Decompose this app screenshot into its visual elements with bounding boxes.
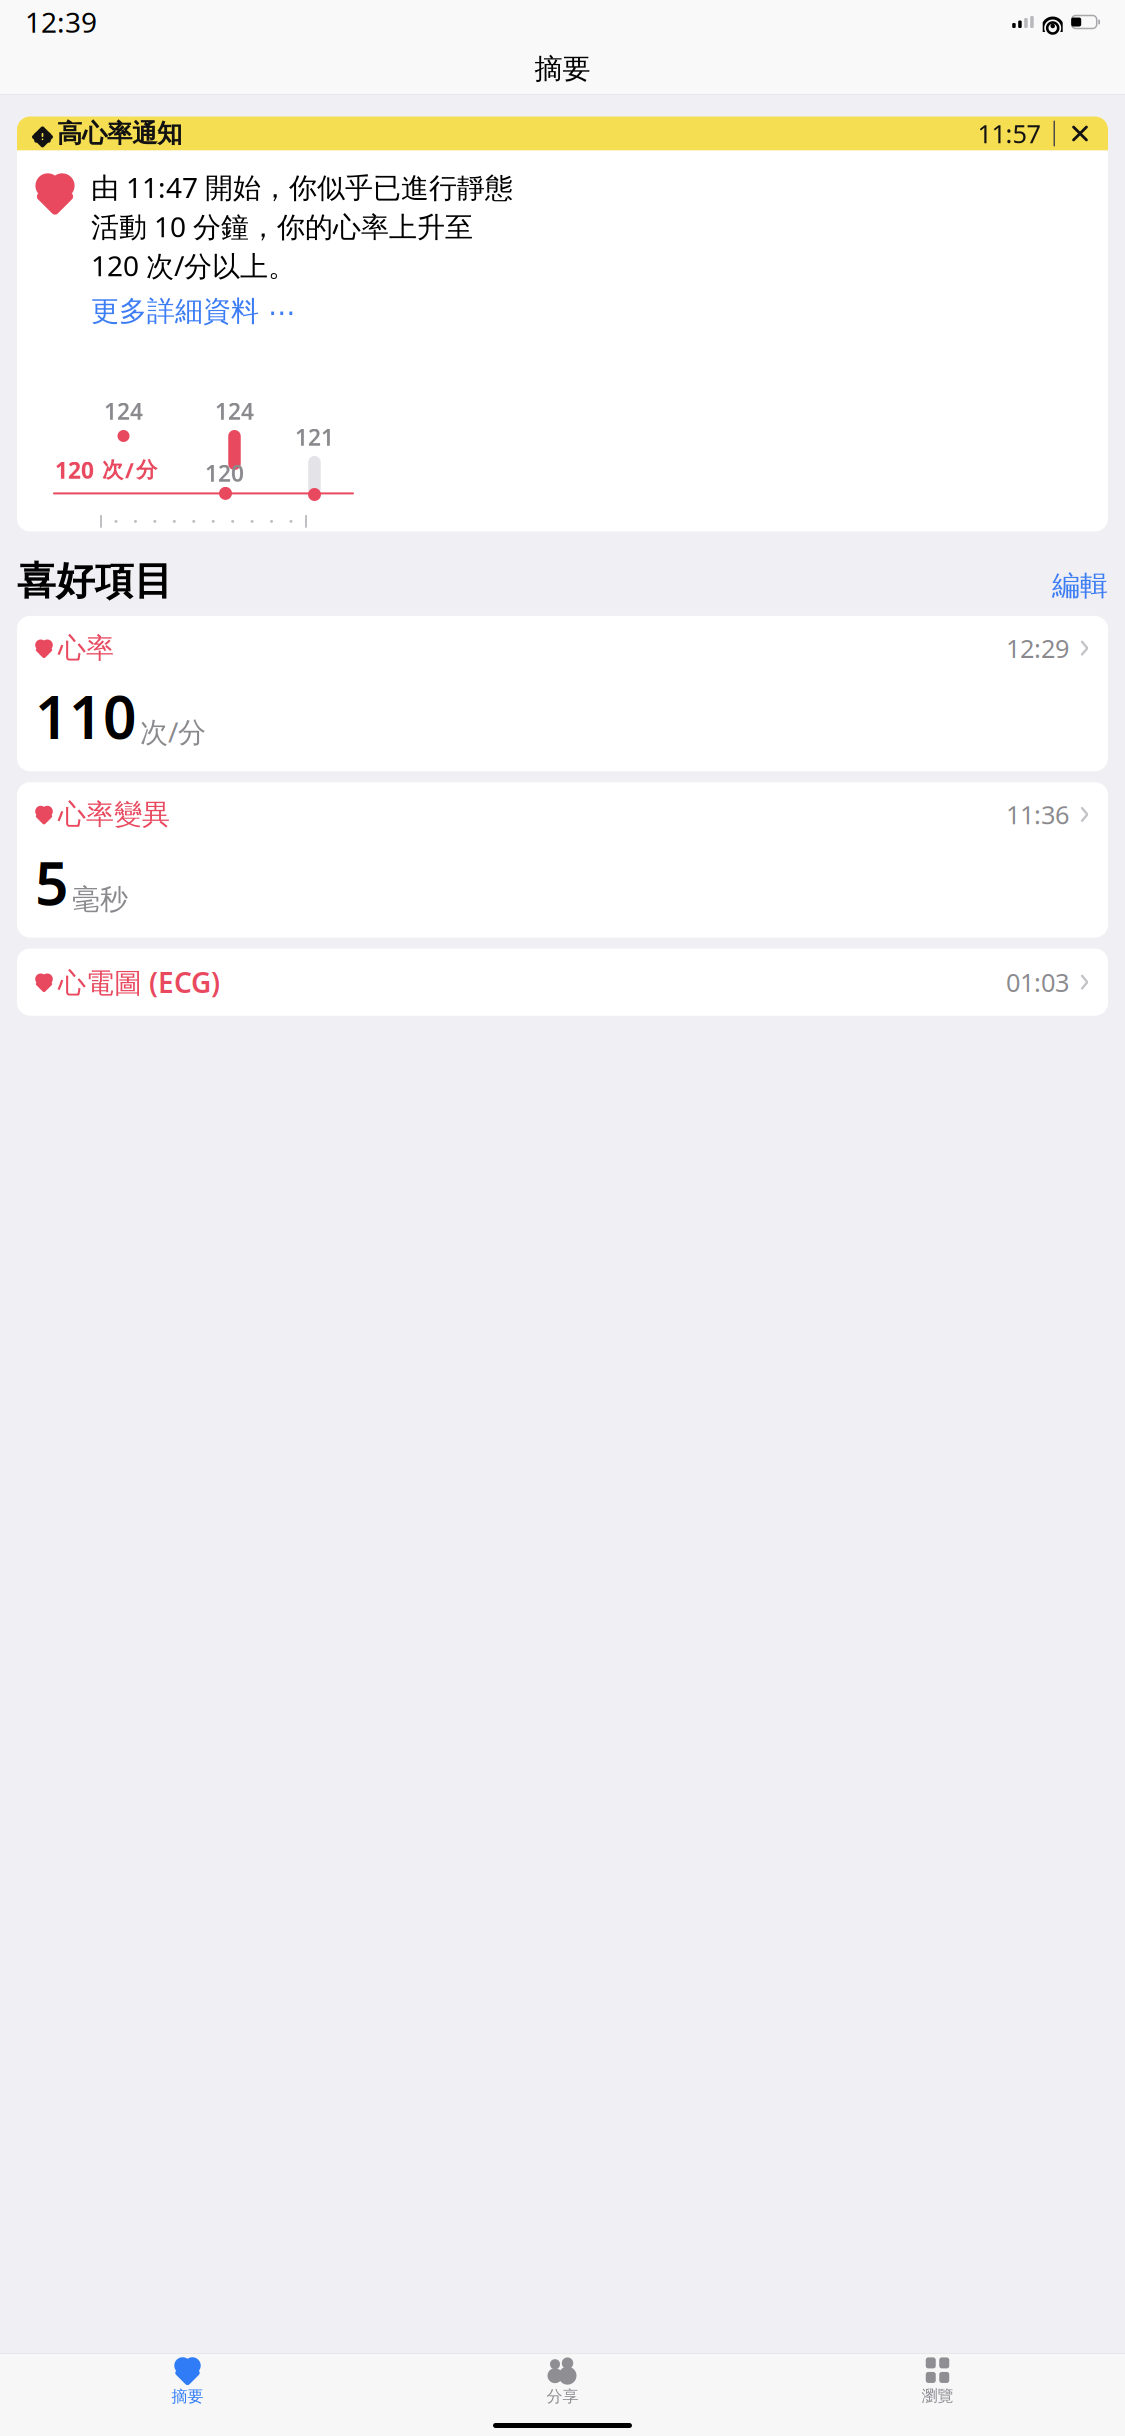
- button[interactable]: 瀏覽: [750, 2350, 1125, 2406]
- staticText: 瀏覽: [921, 2386, 953, 2406]
- staticText: 11:57: [977, 117, 1040, 150]
- staticText: 喜好項目: [17, 557, 173, 605]
- button[interactable]: 摘要: [0, 2350, 375, 2406]
- staticText: 120: [205, 458, 244, 488]
- staticText: 由 11:47 開始，你似乎已進行靜態: [91, 168, 513, 206]
- staticText: 更多詳細資料 ⋯: [91, 294, 296, 328]
- staticText: 11:36: [1006, 798, 1069, 831]
- staticText: 分: [136, 457, 157, 483]
- staticText: 12:29: [1006, 631, 1069, 665]
- staticText: 124: [215, 396, 254, 426]
- staticText: 心率: [58, 631, 114, 665]
- staticText: 分享: [546, 2387, 578, 2406]
- staticText: 毫秒: [72, 882, 128, 916]
- staticText: 次/分: [140, 713, 206, 750]
- button[interactable]: 心電圖 (ECG): [17, 948, 1108, 1016]
- button[interactable]: 心率: [17, 616, 1108, 771]
- staticText: 心率變異: [58, 797, 170, 832]
- button[interactable]: 分享: [375, 2350, 750, 2406]
- staticText: 124: [104, 396, 143, 426]
- staticText: 編輯: [1052, 568, 1108, 603]
- staticText: 次: [96, 457, 123, 483]
- staticText: /: [125, 456, 134, 484]
- button[interactable]: 心率變異: [17, 782, 1108, 937]
- staticText: 高心率通知: [57, 118, 182, 149]
- staticText: 121: [295, 422, 334, 452]
- button[interactable]: 編輯: [1052, 568, 1108, 605]
- staticText: 12:39: [25, 3, 97, 41]
- staticText: 活動 10 分鐘，你的心率上升至: [91, 208, 473, 245]
- staticText: 110: [35, 677, 137, 755]
- staticText: 01:03: [1006, 965, 1069, 999]
- staticText: 120 次/分以上。: [91, 247, 296, 284]
- button[interactable]: 關閉: [1068, 121, 1092, 145]
- button[interactable]: 更多詳細資料 ⋯: [91, 294, 296, 328]
- staticText: 120: [55, 455, 94, 485]
- staticText: 摘要: [171, 2387, 203, 2406]
- staticText: 摘要: [534, 52, 590, 86]
- staticText: 5: [35, 844, 69, 921]
- staticText: 心電圖 (ECG): [58, 963, 220, 1001]
